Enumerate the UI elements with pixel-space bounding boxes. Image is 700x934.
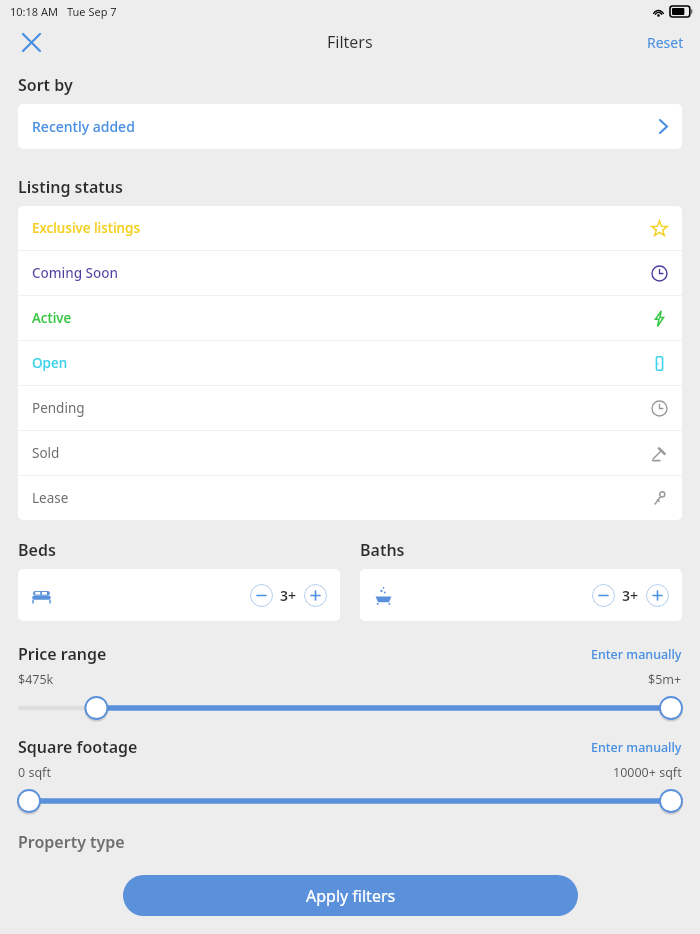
staticText: 10:18 AM [10,4,58,19]
button[interactable]: Decrease [250,584,273,607]
staticText: Listing status [18,176,123,198]
button[interactable]: Apply filters [123,875,578,916]
staticText: 3+ [280,586,297,605]
staticText: Beds [18,539,56,561]
staticText: Sort by [18,74,73,96]
button[interactable]: Lease [18,476,682,520]
staticText: Enter manually [591,646,682,663]
staticText: Baths [360,539,405,561]
staticText: Open [32,354,68,372]
button[interactable]: Sold [18,431,682,475]
staticText: Filters [327,31,373,53]
staticText: $475k [18,671,54,688]
staticText: Sold [32,444,60,462]
button[interactable]: Coming Soon [18,251,682,295]
button[interactable]: Range slider [18,787,682,815]
staticText: Recently added [32,117,135,136]
button[interactable]: Recently added [18,104,682,149]
button[interactable]: Close [14,25,48,59]
button[interactable]: Decrease [592,584,615,607]
button[interactable]: Exclusive listings [18,206,682,250]
button[interactable]: Active [18,296,682,340]
staticText: Square footage [18,736,138,758]
staticText: 10000+ sqft [613,764,682,781]
staticText: 0 sqft [18,764,51,781]
button[interactable]: Increase [646,584,669,607]
staticText: Tue Sep 7 [67,4,117,19]
staticText: 3+ [622,586,639,605]
button[interactable]: Reset [641,27,690,58]
button[interactable]: Open [18,341,682,385]
staticText: $5m+ [648,671,682,688]
staticText: Enter manually [591,739,682,756]
button[interactable]: Range slider [18,694,682,722]
staticText: Active [32,309,72,327]
button[interactable]: Enter manually [591,739,682,756]
staticText: Exclusive listings [32,219,140,237]
staticText: Reset [647,33,684,52]
button[interactable]: Pending [18,386,682,430]
staticText: Apply filters [306,885,396,907]
button[interactable]: Increase [304,584,327,607]
staticText: Property type [18,831,125,853]
staticText: Lease [32,489,69,507]
staticText: Coming Soon [32,264,118,282]
button[interactable]: Enter manually [591,646,682,663]
staticText: Pending [32,399,85,417]
staticText: Price range [18,643,107,665]
